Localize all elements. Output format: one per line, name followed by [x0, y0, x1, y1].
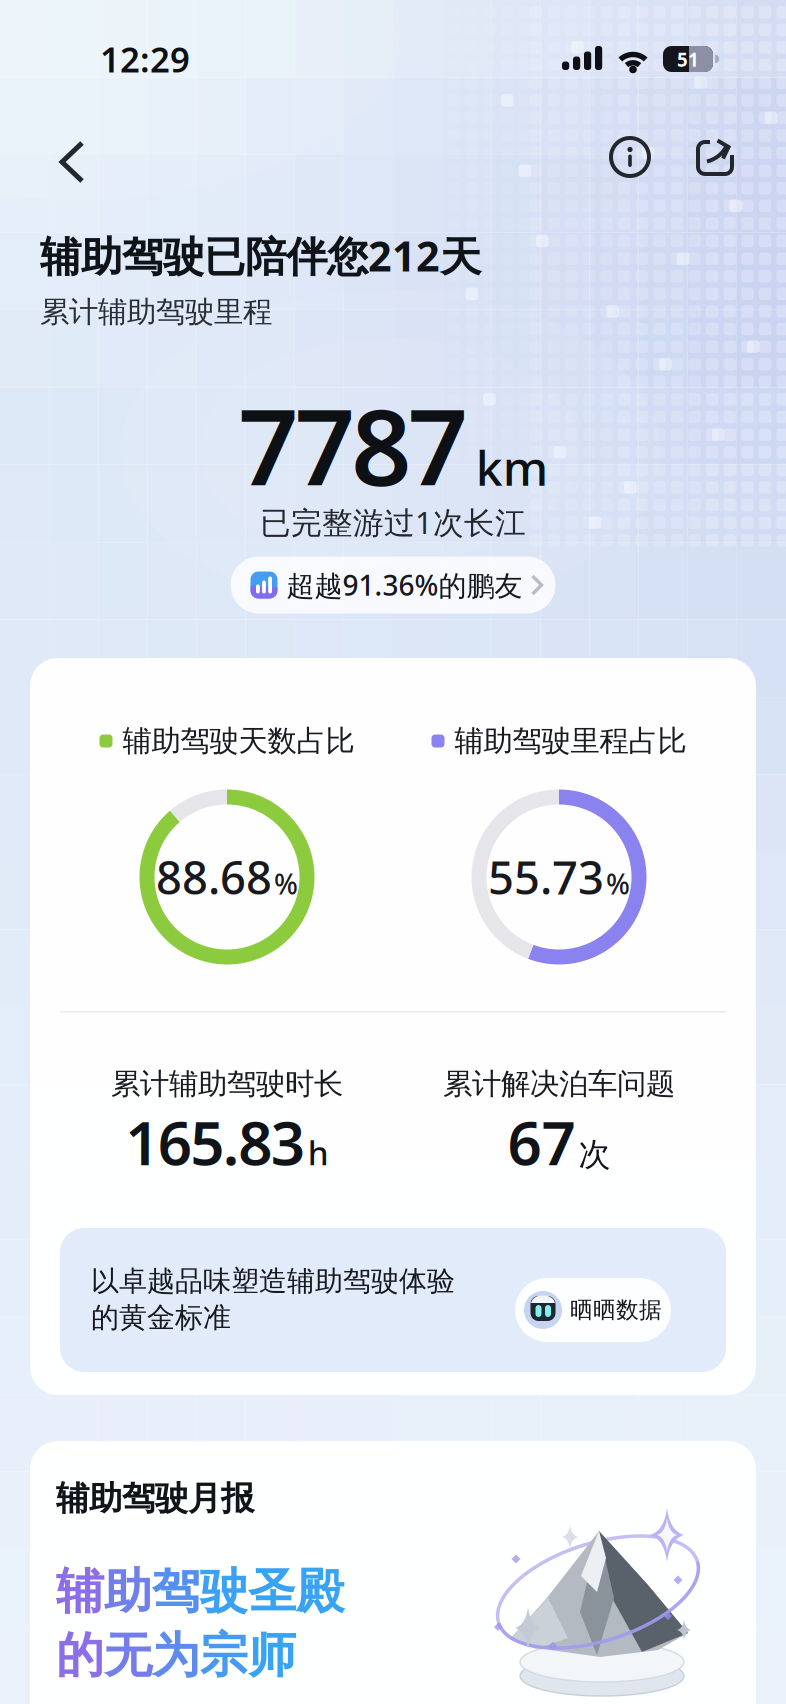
staticText: km	[476, 435, 548, 499]
staticText: 晒晒数据	[570, 1296, 662, 1324]
staticText: 12:29	[100, 36, 190, 82]
staticText: %	[274, 865, 298, 902]
staticText: 圣	[248, 1562, 296, 1621]
staticText: 辅助驾驶天数占比	[122, 723, 354, 759]
button[interactable]: Info	[609, 136, 651, 178]
staticText: 67	[507, 1102, 575, 1182]
staticText: 宗	[200, 1626, 248, 1685]
staticText: h	[308, 1130, 329, 1174]
staticText: 驶	[200, 1562, 248, 1621]
staticText: 无	[104, 1626, 152, 1685]
staticText: 辅助驾驶里程占比	[454, 723, 686, 759]
staticText: 为	[152, 1626, 200, 1685]
staticText: 辅助驾驶月报	[56, 1478, 254, 1519]
staticText: 165.83	[125, 1102, 305, 1182]
staticText: 55.73	[488, 847, 604, 907]
staticText: 师	[248, 1626, 296, 1685]
staticText: 的	[56, 1626, 104, 1685]
staticText: 以卓越品味塑造辅助驾驶体验 的黄金标准	[91, 1264, 455, 1335]
button[interactable]: 超越91.36%的鹏友	[230, 556, 555, 613]
staticText: 辅助驾驶已陪伴您212天	[40, 228, 481, 283]
staticText: 殿	[296, 1562, 344, 1621]
staticText: 累计辅助驾驶里程	[40, 294, 272, 330]
button[interactable]: Back	[58, 141, 86, 183]
staticText: 辅	[56, 1562, 104, 1621]
staticText: 累计辅助驾驶时长	[111, 1066, 343, 1102]
staticText: 助	[104, 1562, 152, 1621]
staticText: 累计解决泊车问题	[443, 1066, 675, 1102]
staticText: 次	[578, 1135, 610, 1174]
button[interactable]: 辅助驾驶月报	[30, 1441, 756, 1704]
staticText: 7787	[238, 375, 468, 515]
staticText: 驾	[152, 1562, 200, 1621]
staticText: %	[606, 865, 630, 902]
button[interactable]: Share	[696, 140, 734, 176]
staticText: 已完整游过1次长江	[260, 502, 526, 542]
staticText: 88.68	[156, 847, 272, 907]
staticText: 超越91.36%的鹏友	[286, 566, 522, 604]
button[interactable]: 晒晒数据	[515, 1278, 671, 1342]
staticText: 51	[677, 47, 699, 72]
